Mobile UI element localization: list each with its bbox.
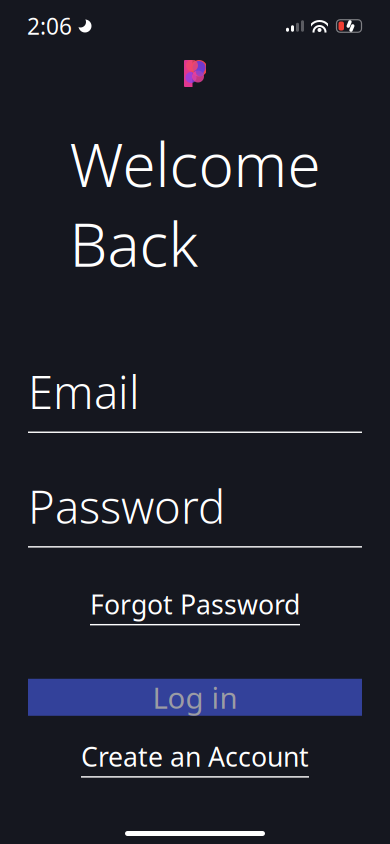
staticText: Email	[28, 361, 140, 422]
button[interactable]: Create an Account	[67, 733, 323, 784]
staticText: Welcome Back	[69, 124, 320, 283]
staticText: Log in	[152, 678, 237, 717]
button[interactable]: Log in	[28, 679, 362, 716]
staticText: Forgot Password	[90, 587, 300, 622]
staticText: Password	[28, 476, 225, 536]
button[interactable]: Forgot Password	[76, 581, 314, 631]
staticText: Create an Account	[81, 739, 309, 774]
staticText: 2:06	[27, 11, 72, 41]
